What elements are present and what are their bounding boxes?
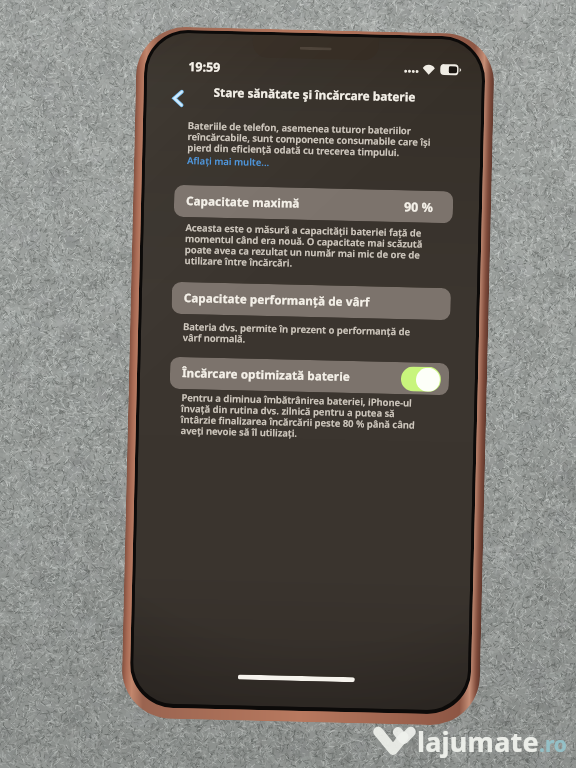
button[interactable]: Optimized battery charging toggle: [401, 366, 441, 392]
staticText: Capacitate performanță de vârf: [184, 290, 370, 310]
staticText: Bateriile de telefon, asemenea tuturor b…: [187, 121, 433, 160]
staticText: Capacitate maximă: [186, 193, 300, 212]
staticText: .ro: [539, 730, 567, 759]
staticText: Încărcare optimizată baterie: [182, 365, 350, 385]
button[interactable]: Back: [162, 83, 193, 112]
button[interactable]: Aflați mai multe...: [187, 154, 270, 169]
button[interactable]: Încărcare optimizată baterie: [170, 357, 449, 395]
staticText: Pentru a diminua îmbătrânirea bateriei, …: [180, 393, 426, 443]
staticText: Bateria dvs. permite în prezent o perfor…: [183, 322, 428, 350]
staticText: Stare sănătate şi încărcare baterie: [213, 84, 416, 104]
button[interactable]: Capacitate performanță de vârf: [171, 282, 451, 320]
staticText: lajumate: [417, 723, 539, 760]
staticText: 19:59: [188, 58, 221, 76]
staticText: 90 %: [404, 198, 433, 216]
button[interactable]: Capacitate maximă: [174, 185, 453, 223]
staticText: Aceasta este o măsură a capacității bate…: [184, 223, 430, 273]
